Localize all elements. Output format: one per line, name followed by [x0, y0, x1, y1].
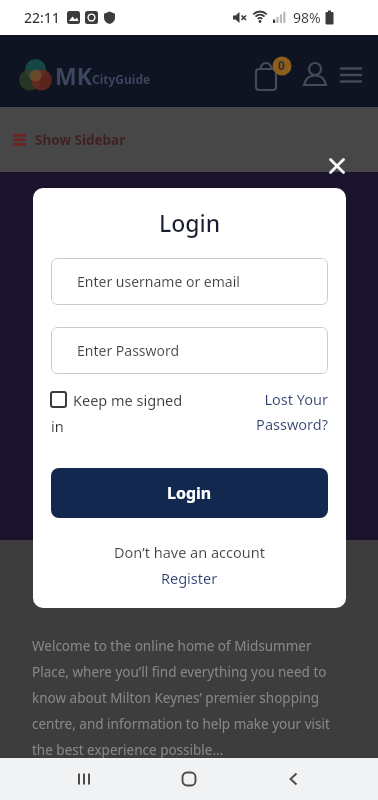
staticText: MK — [55, 60, 92, 91]
staticText: Welcome to the online home of Midsummer … — [32, 637, 330, 758]
button[interactable] — [300, 60, 330, 90]
staticText: 98% — [293, 8, 321, 27]
staticText: Register — [161, 568, 218, 588]
staticText: Don’t have an account — [114, 542, 265, 562]
button[interactable]: 0 — [252, 54, 294, 96]
staticText: Keep me signed — [73, 390, 183, 410]
button[interactable]: Show Sidebar — [0, 107, 378, 172]
button[interactable]: Register — [51, 568, 328, 588]
staticText: Login — [159, 207, 221, 238]
button[interactable]: Enter username or email — [51, 258, 328, 305]
staticText: Enter Password — [77, 341, 180, 360]
staticText: Enter username or email — [77, 272, 240, 291]
staticText: 0 — [278, 57, 285, 73]
staticText: Login — [167, 482, 212, 504]
button[interactable] — [338, 62, 364, 88]
button[interactable]: Enter Password — [51, 327, 328, 374]
button[interactable] — [51, 392, 181, 439]
button[interactable] — [326, 155, 348, 177]
button[interactable] — [273, 758, 314, 800]
staticText: 22:11 — [24, 8, 60, 27]
button[interactable] — [168, 758, 210, 800]
staticText: Show Sidebar — [35, 131, 126, 149]
button[interactable]: Login — [51, 468, 328, 518]
button[interactable]: Lost Your Password? — [51, 389, 328, 435]
staticText: in — [51, 416, 64, 436]
staticText: CityGuide — [92, 71, 151, 87]
button[interactable] — [63, 758, 104, 800]
